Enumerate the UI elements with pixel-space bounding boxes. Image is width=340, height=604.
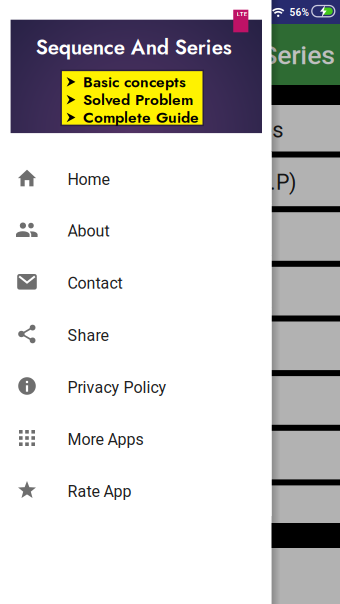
staticText: LTE	[237, 11, 247, 18]
staticText: About	[68, 222, 110, 240]
button[interactable]: More Apps	[0, 412, 271, 464]
staticText: Sequence And Series	[36, 33, 232, 62]
staticText: Solved Problem	[83, 89, 193, 111]
button[interactable]: Contact	[0, 256, 271, 308]
staticText: Share	[68, 326, 109, 345]
staticText: Sequence And Series	[83, 40, 335, 71]
button[interactable]: Rate App	[0, 464, 271, 516]
button[interactable]: Share	[0, 308, 271, 360]
staticText: 56%	[289, 7, 308, 19]
staticText: Complete Guide	[83, 106, 199, 129]
staticText: Sequence and Series	[81, 117, 283, 143]
staticText: Privacy Policy	[68, 378, 167, 397]
staticText: Arithmetic Progression (A.P)	[28, 170, 296, 195]
staticText: Contact	[68, 274, 123, 293]
button[interactable]: About	[0, 203, 271, 255]
staticText: Home	[68, 170, 110, 189]
staticText: Rate App	[68, 482, 132, 501]
staticText: Basic concepts	[83, 71, 186, 93]
button[interactable]: Privacy Policy	[0, 360, 271, 412]
button[interactable]: Home	[0, 152, 271, 204]
staticText: More Apps	[68, 430, 144, 449]
